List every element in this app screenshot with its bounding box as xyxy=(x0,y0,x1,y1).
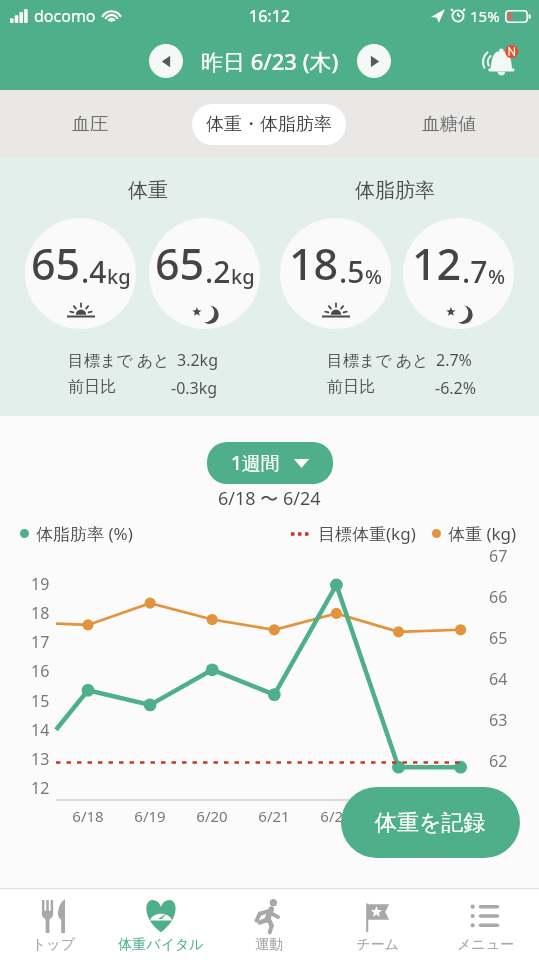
staticText: 6/23 xyxy=(383,806,415,826)
button[interactable]: 前の日 xyxy=(149,44,183,78)
staticText: 13 xyxy=(31,748,50,770)
button[interactable]: 18 xyxy=(280,218,391,329)
staticText: 19 xyxy=(31,573,50,595)
staticText: 64 xyxy=(489,668,508,690)
staticText: 18 xyxy=(289,234,339,293)
staticText: .7 xyxy=(462,251,488,292)
staticText: 前日比 xyxy=(327,377,375,397)
button[interactable]: 体重バイタル xyxy=(107,889,215,960)
staticText: % xyxy=(488,263,506,290)
staticText: 65 xyxy=(31,234,81,293)
button[interactable]: メニュー xyxy=(431,889,539,960)
staticText: 63 xyxy=(489,709,508,731)
staticText: docomo xyxy=(34,5,96,27)
button[interactable]: 65 xyxy=(149,218,260,329)
staticText: 6/19 xyxy=(134,806,166,826)
button[interactable]: 体重・体脂肪率 xyxy=(179,90,359,158)
button[interactable]: 65 xyxy=(25,218,136,329)
staticText: .5 xyxy=(339,251,365,292)
button[interactable]: 次の日 xyxy=(357,44,391,78)
staticText: 体脂肪率 xyxy=(355,178,435,200)
staticText: 6/21 xyxy=(258,806,290,826)
staticText: 16 xyxy=(31,660,50,682)
staticText: 体重 xyxy=(128,178,168,200)
staticText: 体脂肪率 (%) xyxy=(36,522,133,545)
staticText: 目標体重(kg) xyxy=(318,522,416,545)
staticText: .4 xyxy=(81,251,107,292)
staticText: 運動 xyxy=(255,936,283,954)
button[interactable]: チーム xyxy=(323,889,431,960)
staticText: % xyxy=(365,263,383,290)
staticText: 2.7% xyxy=(436,349,472,371)
staticText: kg xyxy=(107,263,131,290)
staticText: 6/18 〜 6/24 xyxy=(218,486,321,511)
staticText: 14 xyxy=(31,719,50,741)
staticText: 3.2kg xyxy=(177,349,218,371)
button[interactable]: 体重を記録 xyxy=(341,787,520,858)
staticText: 目標まで あと xyxy=(327,349,429,371)
staticText: 62 xyxy=(489,750,508,772)
staticText: 65 xyxy=(155,234,205,293)
staticText: トップ xyxy=(32,936,75,954)
button[interactable]: 12 xyxy=(403,218,514,329)
staticText: 血糖値 xyxy=(422,113,476,136)
staticText: 16:12 xyxy=(249,5,290,27)
staticText: 前日比 xyxy=(68,377,116,397)
button[interactable]: トップ xyxy=(0,889,107,960)
staticText: 1週間 xyxy=(231,450,280,476)
button[interactable]: 1週間 xyxy=(207,442,333,484)
staticText: 17 xyxy=(31,631,50,653)
staticText: 18 xyxy=(31,602,50,624)
staticText: 体重を記録 xyxy=(375,809,486,837)
staticText: kg xyxy=(231,263,255,290)
staticText: 15 xyxy=(31,690,50,712)
staticText: 15% xyxy=(470,6,500,26)
staticText: 体重バイタル xyxy=(118,936,204,954)
staticText: 体重 (kg) xyxy=(448,522,517,545)
staticText: 6/20 xyxy=(196,806,228,826)
staticText: 6/22 xyxy=(320,806,352,826)
staticText: -6.2% xyxy=(435,377,477,399)
staticText: 体重・体脂肪率 xyxy=(206,113,332,136)
staticText: 12 xyxy=(412,234,462,293)
staticText: 67 xyxy=(489,545,508,567)
staticText: .2 xyxy=(205,251,231,292)
button[interactable]: 運動 xyxy=(215,889,323,960)
staticText: チーム xyxy=(356,936,399,954)
staticText: メニュー xyxy=(457,936,514,954)
button[interactable]: 血糖値 xyxy=(359,90,539,158)
staticText: 65 xyxy=(489,627,508,649)
button[interactable]: 血圧 xyxy=(0,90,179,158)
button[interactable]: お知らせ xyxy=(475,36,525,86)
staticText: 66 xyxy=(489,586,508,608)
staticText: 12 xyxy=(31,777,50,799)
staticText: 目標まで あと xyxy=(68,349,170,371)
staticText: 昨日 6/23 (木) xyxy=(201,46,339,76)
staticText: 血圧 xyxy=(72,113,108,136)
staticText: -0.3kg xyxy=(171,377,218,399)
staticText: 6/18 xyxy=(72,806,104,826)
staticText: 6/24 xyxy=(445,806,477,826)
